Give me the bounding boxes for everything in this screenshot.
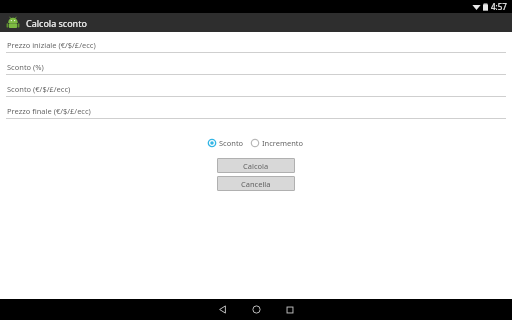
button[interactable]: Cancella xyxy=(217,176,295,191)
staticText: Prezzo finale (€/$/£/ecc) xyxy=(7,106,91,116)
staticText: Calcola sconto xyxy=(26,17,87,29)
button[interactable]: Sconto (%) xyxy=(0,59,512,81)
button[interactable]: Prezzo iniziale (€/$/£/ecc) xyxy=(0,37,512,59)
button[interactable]: Back xyxy=(205,299,239,320)
button[interactable]: Sconto (€/$/£/ecc) xyxy=(0,81,512,103)
button[interactable]: Incremento xyxy=(251,137,304,149)
button[interactable]: Prezzo finale (€/$/£/ecc) xyxy=(0,103,512,125)
staticText: Calcola xyxy=(243,161,269,171)
staticText: Sconto (€/$/£/ecc) xyxy=(7,84,71,94)
staticText: Incremento xyxy=(262,138,304,148)
button[interactable]: Recent apps xyxy=(273,299,307,320)
staticText: Sconto xyxy=(219,138,244,148)
button[interactable]: Calcola xyxy=(217,158,295,173)
staticText: Prezzo iniziale (€/$/£/ecc) xyxy=(7,40,96,50)
button[interactable]: Sconto xyxy=(208,137,244,149)
button[interactable]: Home xyxy=(239,299,273,320)
staticText: 4:57 xyxy=(491,1,507,12)
staticText: Sconto (%) xyxy=(7,62,44,72)
staticText: Cancella xyxy=(241,179,271,189)
